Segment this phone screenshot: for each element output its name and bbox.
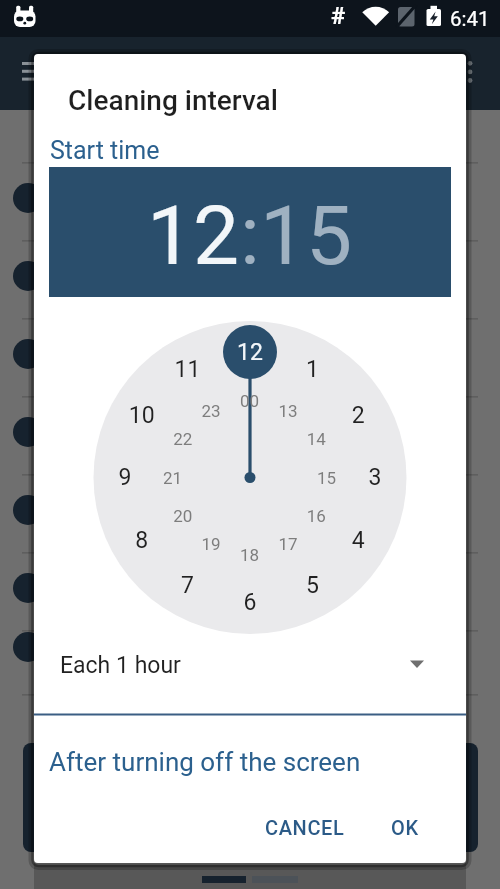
button[interactable]: 15: [260, 188, 353, 284]
button[interactable]: [94, 321, 407, 634]
button[interactable]: OK: [372, 806, 438, 848]
staticText: :: [240, 188, 260, 284]
button[interactable]: [49, 641, 451, 691]
staticText: Start time: [50, 136, 160, 165]
staticText: 15: [260, 188, 353, 284]
staticText: 12: [147, 188, 240, 284]
staticText: #: [331, 2, 346, 30]
staticText: After turning off the screen: [49, 747, 361, 777]
staticText: CANCEL: [265, 816, 345, 839]
button[interactable]: 12: [147, 188, 240, 284]
staticText: Each 1 hour: [60, 652, 181, 679]
staticText: Cleaning interval: [68, 84, 278, 117]
button[interactable]: [34, 726, 466, 790]
staticText: OK: [391, 816, 419, 839]
button[interactable]: CANCEL: [258, 806, 352, 848]
staticText: 6:41: [450, 7, 490, 31]
